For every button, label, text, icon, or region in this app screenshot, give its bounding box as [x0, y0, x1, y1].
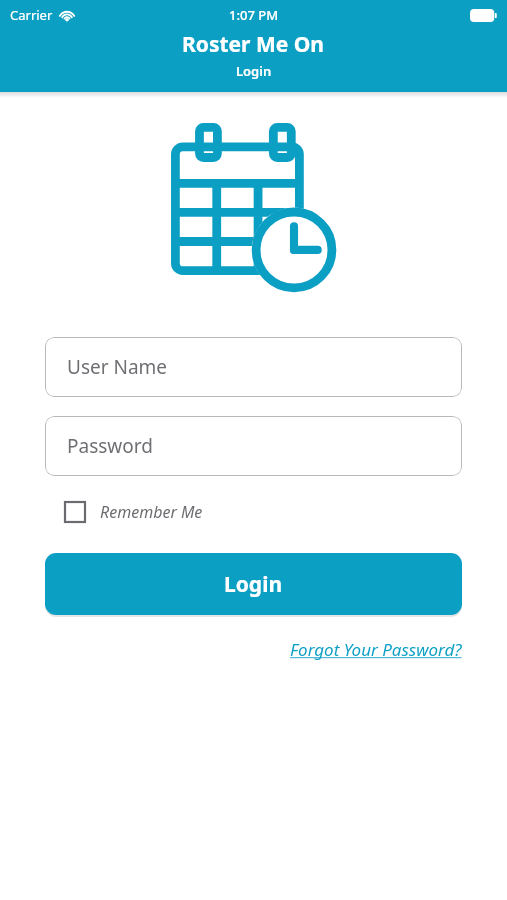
staticText: Roster Me On	[182, 30, 325, 59]
button[interactable]: Login	[45, 553, 462, 615]
staticText: Forgot Your Password?	[290, 638, 462, 661]
staticText: Password	[67, 433, 153, 459]
button[interactable]: Forgot Your Password?	[290, 638, 462, 661]
button[interactable]: User Name	[45, 337, 462, 397]
staticText: User Name	[67, 354, 168, 380]
staticText: Login	[224, 570, 283, 599]
staticText: Remember Me	[100, 501, 203, 523]
staticText: 1:07 PM	[229, 6, 279, 24]
staticText: Carrier	[10, 6, 53, 24]
staticText: Login	[236, 62, 272, 80]
button[interactable]: Password	[45, 416, 462, 476]
button[interactable]: Remember Me	[64, 495, 203, 529]
